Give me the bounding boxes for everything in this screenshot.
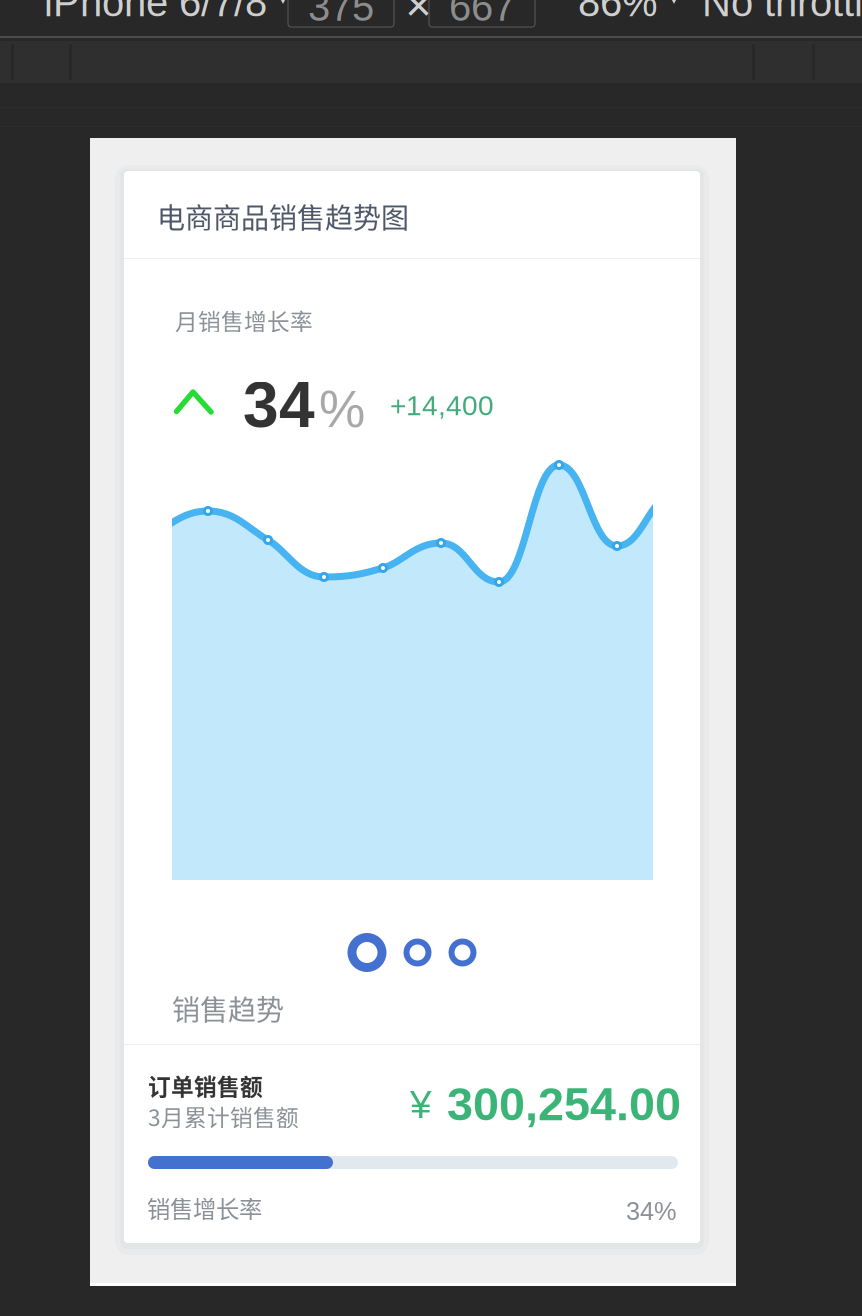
staticText: ✕ [404, 0, 433, 26]
button[interactable]: 86% [578, 0, 680, 25]
button[interactable]: iPhone 6/7/8 [44, 0, 289, 25]
staticText: +14,400 [390, 390, 494, 421]
staticText: 3月累计销售额 [148, 1100, 299, 1133]
button[interactable]: No throttling [702, 0, 862, 25]
staticText: No throttling [702, 0, 862, 25]
staticText: 375 [308, 0, 374, 29]
staticText: 电商商品销售趋势图 [157, 196, 409, 236]
staticText: ¥ [410, 1083, 432, 1126]
staticText: 销售增长率 [147, 1191, 262, 1225]
staticText: 销售趋势 [172, 988, 284, 1028]
staticText: 300,254.00 [447, 1078, 681, 1130]
staticText: 月销售增长率 [175, 304, 313, 337]
staticText: % [319, 380, 365, 438]
button[interactable]: Page 1 [347, 933, 386, 972]
staticText: 订单销售额 [148, 1069, 263, 1102]
button[interactable]: Page 3 [448, 938, 476, 966]
staticText: iPhone 6/7/8 [44, 0, 267, 25]
button[interactable]: Page 2 [403, 938, 431, 966]
staticText: 34 [243, 369, 315, 440]
staticText: 667 [449, 0, 515, 29]
staticText: 86% [578, 0, 658, 25]
staticText: 34% [626, 1197, 677, 1225]
